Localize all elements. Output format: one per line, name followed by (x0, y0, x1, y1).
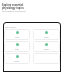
staticText: Explore essential (2, 3, 24, 6)
staticText: Brain (15, 48, 19, 50)
staticText: physiology topics (2, 6, 24, 9)
staticText: Muscle (14, 60, 20, 62)
button[interactable]: Kidney (33, 41, 60, 52)
button[interactable]: Lungs (33, 29, 60, 40)
staticText: Kidney (44, 48, 50, 50)
staticText: Tap a system to start learning (2, 10, 26, 12)
button[interactable]: Muscle (4, 53, 30, 64)
staticText: Heart (15, 36, 20, 38)
button[interactable] (33, 53, 60, 64)
staticText: Lungs (44, 36, 49, 38)
button[interactable]: Brain (4, 41, 30, 52)
staticText: Body systems (5, 26, 16, 28)
button[interactable]: Heart (4, 29, 30, 40)
